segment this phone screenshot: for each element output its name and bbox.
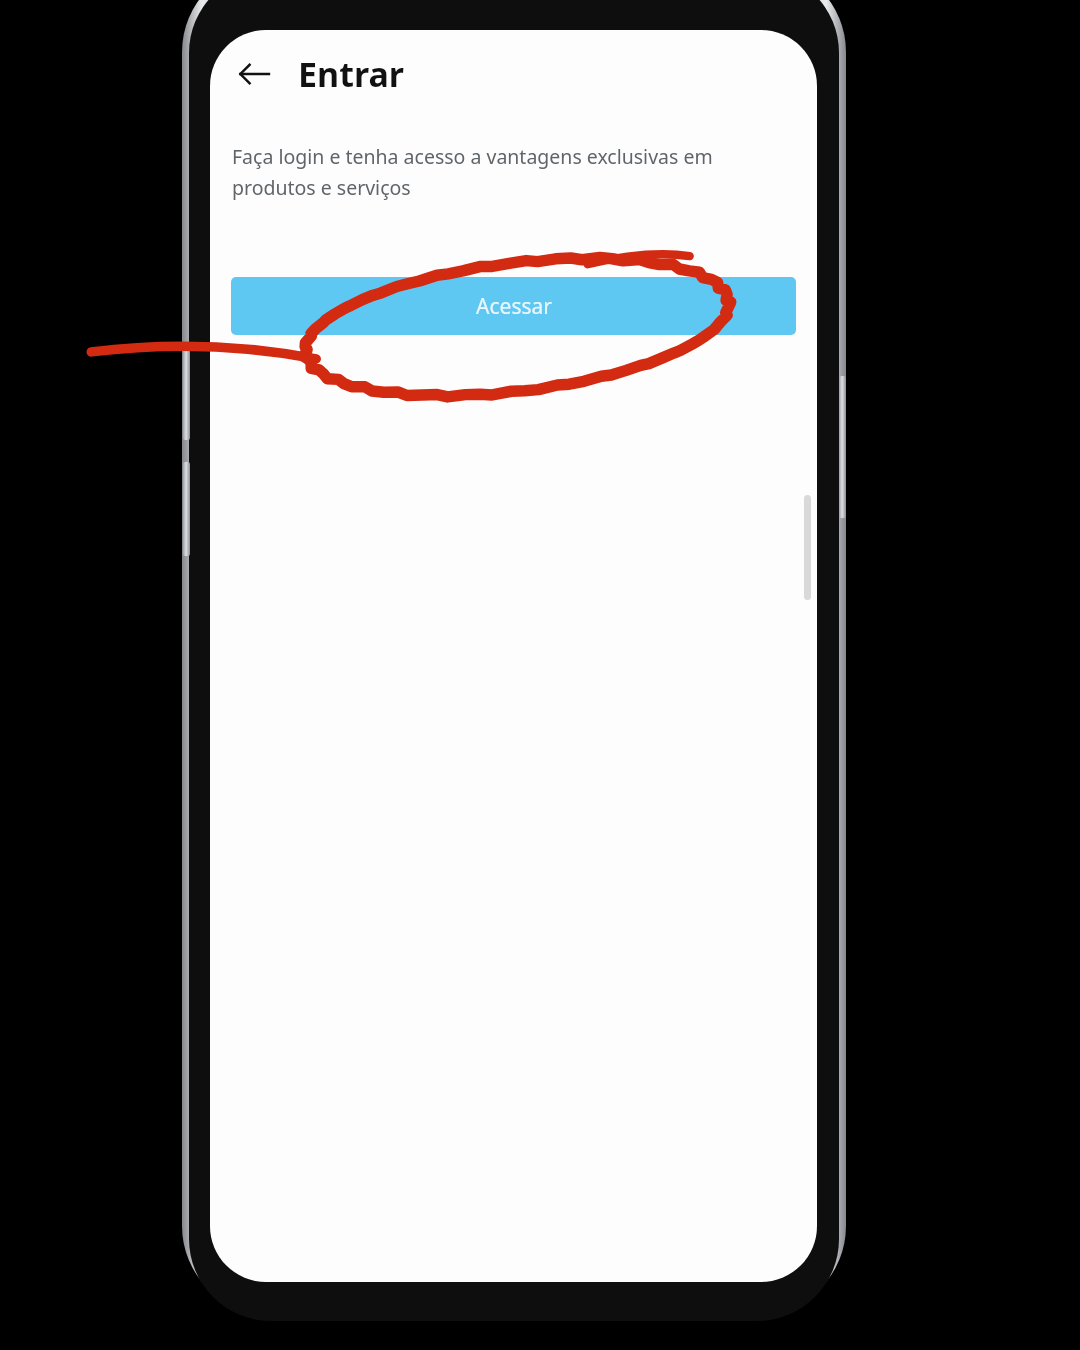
staticText: Acessar — [476, 292, 552, 321]
button[interactable]: Voltar — [224, 44, 284, 104]
staticText: Faça login e tenha acesso a vantagens ex… — [232, 143, 801, 201]
button[interactable]: Acessar — [231, 277, 796, 335]
staticText: Entrar — [298, 51, 404, 97]
